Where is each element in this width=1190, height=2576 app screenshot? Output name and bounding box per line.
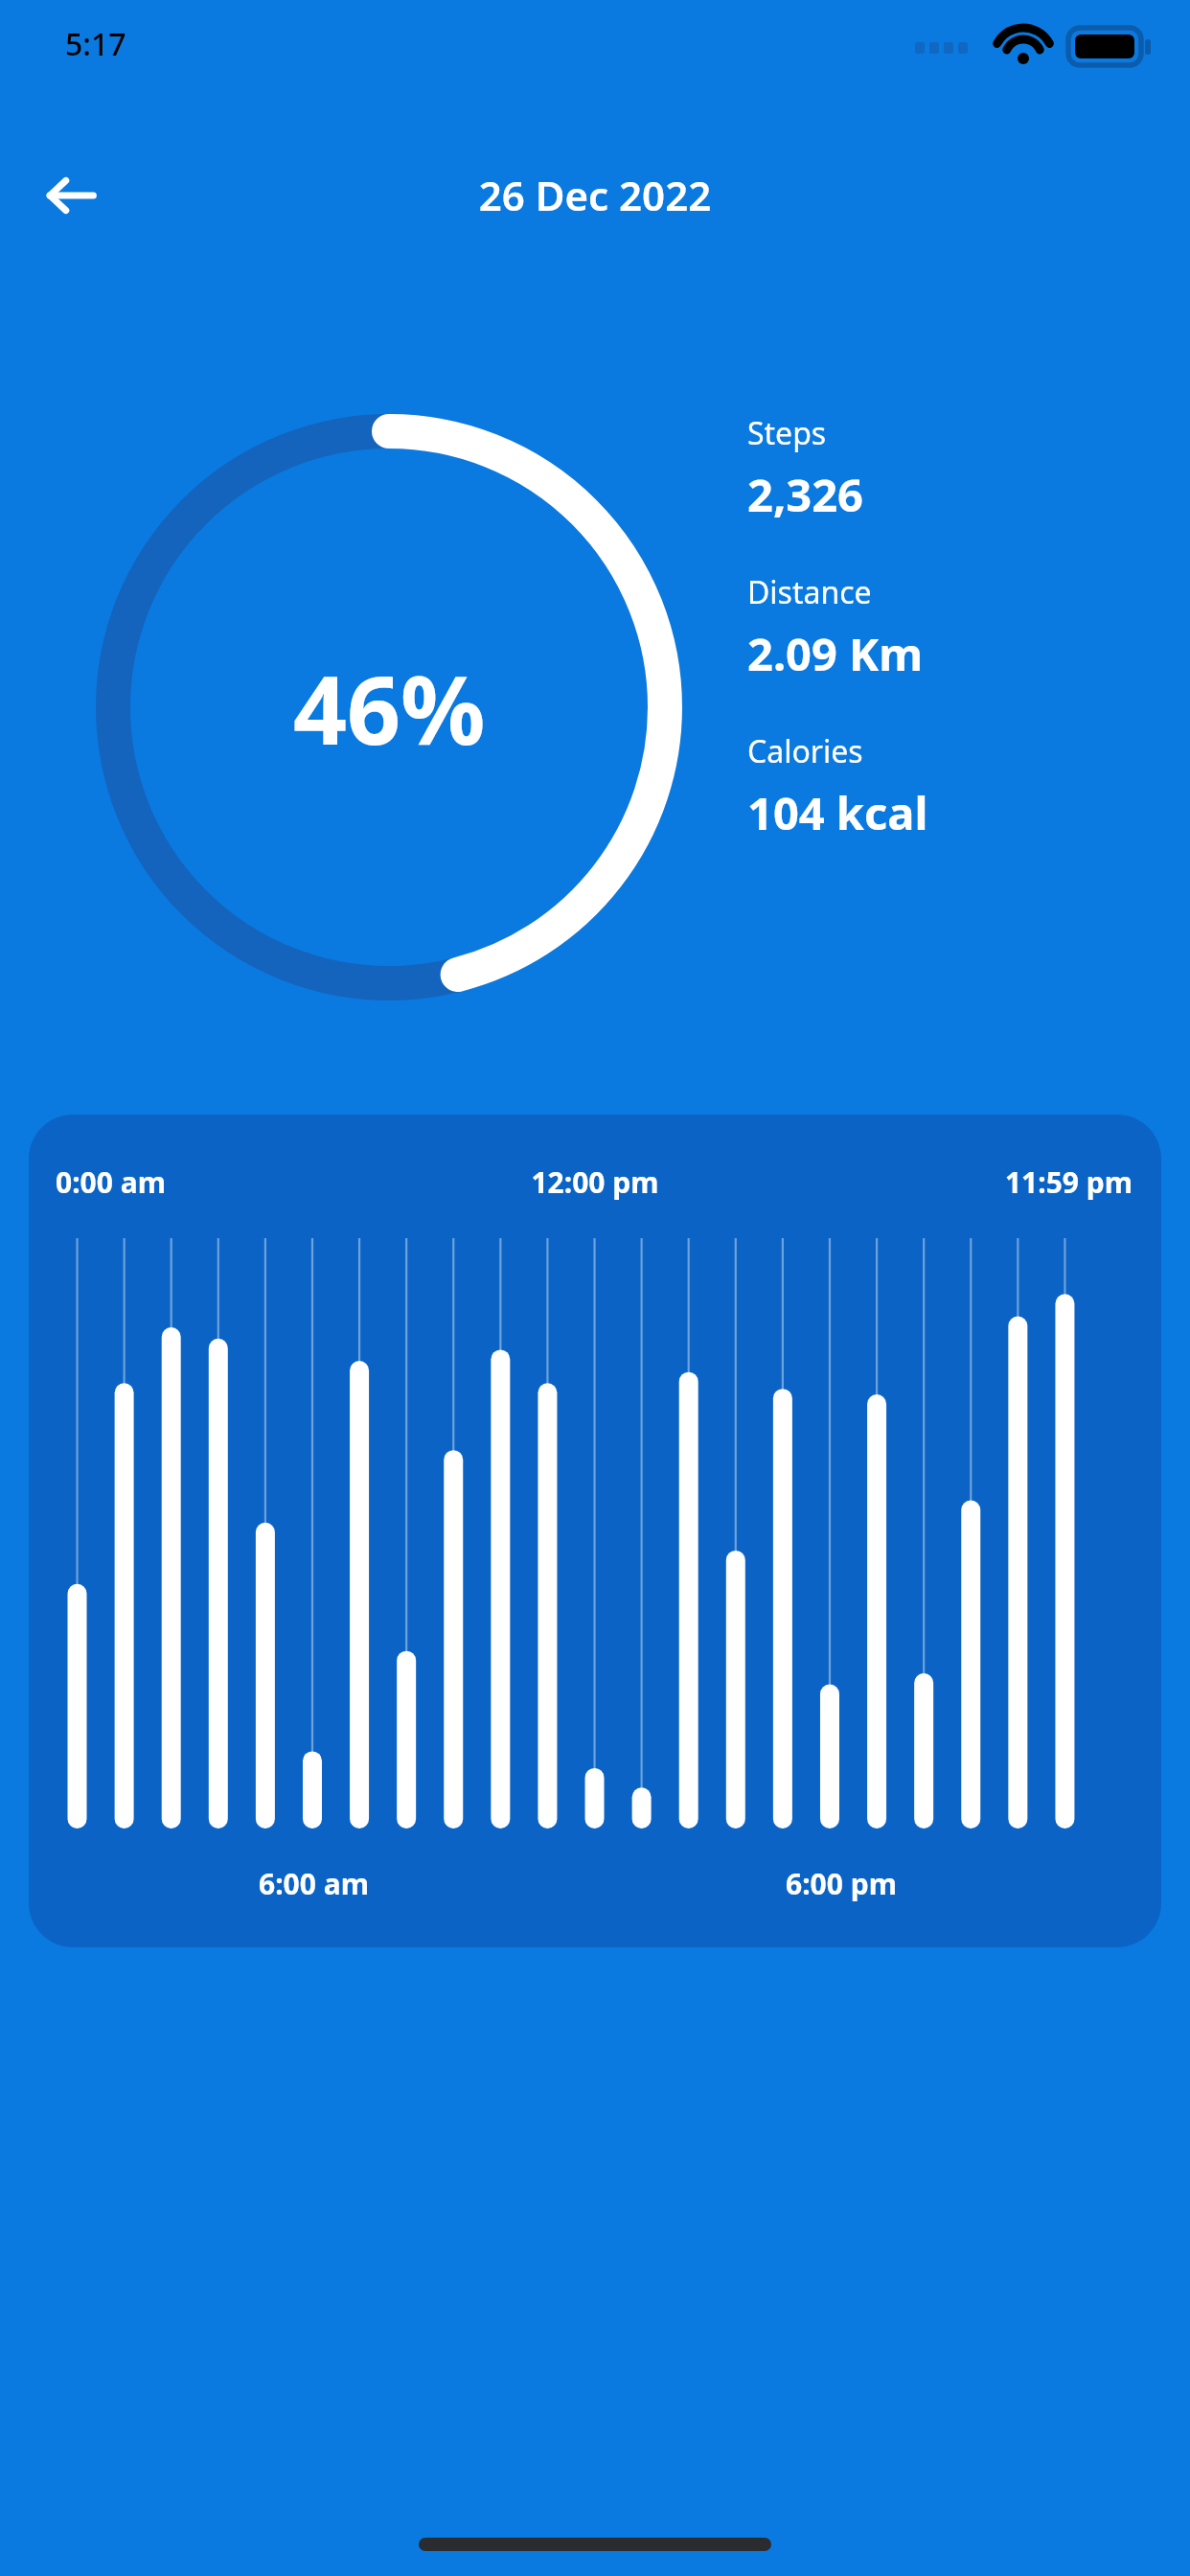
staticText: 12:00 pm xyxy=(29,1162,1161,1202)
staticText: Distance xyxy=(747,571,872,613)
staticText: 104 kcal xyxy=(747,782,928,843)
button[interactable]: Back xyxy=(27,151,115,240)
staticText: 2,326 xyxy=(747,464,863,525)
staticText: 5:17 xyxy=(65,23,126,65)
staticText: 6:00 pm xyxy=(786,1864,897,1903)
staticText: 6:00 am xyxy=(259,1864,369,1903)
button[interactable]: 0:00 am xyxy=(29,1115,1161,1947)
staticText: Steps xyxy=(747,412,827,454)
staticText: 2.09 Km xyxy=(747,623,924,684)
staticText: 46% xyxy=(293,644,486,771)
staticText: Calories xyxy=(747,730,863,772)
staticText: 11:59 pm xyxy=(29,1162,1133,1202)
staticText: 26 Dec 2022 xyxy=(0,168,1190,222)
staticText: 0:00 am xyxy=(56,1162,166,1202)
